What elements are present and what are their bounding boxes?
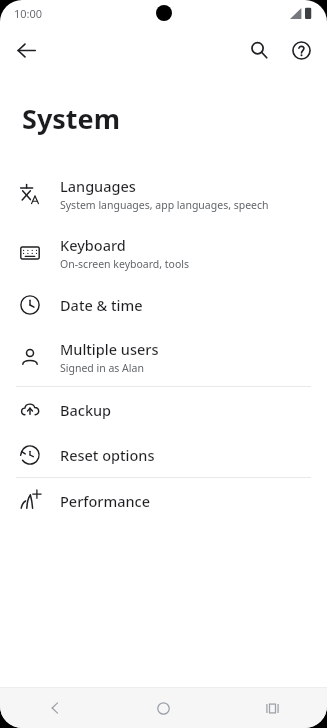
- button[interactable]: Multiple users: [0, 327, 327, 386]
- button[interactable]: Languages: [0, 164, 327, 223]
- staticText: Reset options: [60, 445, 155, 465]
- button[interactable]: Keyboard: [0, 223, 327, 282]
- staticText: 10:00: [14, 6, 43, 21]
- button[interactable]: Recent apps: [218, 688, 327, 728]
- button[interactable]: Performance: [0, 478, 327, 523]
- button[interactable]: Reset options: [0, 432, 327, 477]
- button[interactable]: Back: [0, 688, 109, 728]
- staticText: Keyboard: [60, 235, 126, 255]
- button[interactable]: Search: [239, 30, 279, 70]
- staticText: System languages, app languages, speech: [60, 198, 269, 212]
- staticText: On-screen keyboard, tools: [60, 257, 190, 271]
- staticText: System: [22, 100, 121, 137]
- button[interactable]: Backup: [0, 387, 327, 432]
- staticText: Backup: [60, 400, 112, 420]
- staticText: Date & time: [60, 295, 143, 315]
- staticText: Performance: [60, 491, 151, 511]
- button[interactable]: Date & time: [0, 282, 327, 327]
- staticText: Signed in as Alan: [60, 361, 144, 375]
- staticText: Multiple users: [60, 339, 159, 359]
- button[interactable]: Back: [6, 30, 46, 70]
- button[interactable]: Help: [281, 30, 321, 70]
- staticText: Languages: [60, 176, 136, 196]
- button[interactable]: Home: [109, 688, 218, 728]
